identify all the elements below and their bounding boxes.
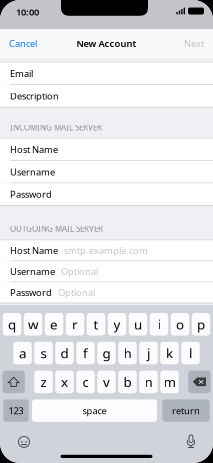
- button[interactable]: b: [118, 371, 137, 393]
- staticText: smtp.example.com: [64, 244, 148, 257]
- button[interactable]: g: [97, 342, 116, 364]
- staticText: 123: [8, 404, 23, 417]
- button[interactable]: Delete: [188, 371, 211, 393]
- button[interactable]: Email: [0, 63, 213, 84]
- button[interactable]: Next: [175, 29, 213, 58]
- button[interactable]: Shift: [2, 371, 25, 393]
- button[interactable]: Host Name: [0, 240, 213, 261]
- staticText: g: [102, 344, 110, 362]
- staticText: i: [157, 315, 160, 333]
- staticText: Password: [10, 188, 52, 200]
- staticText: OUTGOING MAIL SERVER: [10, 223, 103, 234]
- button[interactable]: x: [55, 371, 74, 393]
- button[interactable]: Emoji keyboard: [13, 435, 35, 449]
- button[interactable]: s: [34, 342, 53, 364]
- button[interactable]: y: [108, 313, 126, 335]
- staticText: l: [189, 344, 192, 362]
- staticText: Host Name: [10, 143, 58, 156]
- staticText: New Account: [76, 37, 136, 50]
- staticText: s: [40, 344, 46, 362]
- button[interactable]: Dictation: [180, 435, 202, 449]
- staticText: Optional: [61, 265, 98, 278]
- staticText: Optional: [58, 286, 95, 299]
- staticText: r: [72, 315, 78, 333]
- staticText: v: [103, 373, 110, 391]
- staticText: Cancel: [9, 37, 37, 50]
- staticText: k: [166, 344, 173, 362]
- staticText: q: [8, 315, 16, 333]
- button[interactable]: Cancel: [0, 29, 46, 58]
- button[interactable]: o: [171, 313, 189, 335]
- button[interactable]: e: [45, 313, 63, 335]
- button[interactable]: t: [87, 313, 105, 335]
- button[interactable]: z: [34, 371, 53, 393]
- button[interactable]: Password: [0, 282, 213, 303]
- staticText: t: [93, 315, 98, 333]
- staticText: n: [144, 373, 152, 391]
- staticText: Email: [10, 67, 33, 80]
- staticText: return: [172, 404, 200, 417]
- button[interactable]: return: [162, 399, 210, 422]
- staticText: p: [197, 315, 205, 333]
- button[interactable]: j: [139, 342, 158, 364]
- staticText: a: [19, 344, 26, 362]
- staticText: o: [176, 315, 184, 333]
- staticText: 10:00: [16, 6, 39, 18]
- staticText: f: [83, 344, 88, 362]
- staticText: b: [123, 373, 131, 391]
- staticText: Username: [10, 265, 55, 278]
- button[interactable]: Username: [0, 161, 213, 183]
- staticText: x: [61, 373, 68, 391]
- button[interactable]: d: [55, 342, 74, 364]
- button[interactable]: p: [192, 313, 210, 335]
- staticText: m: [163, 373, 175, 391]
- button[interactable]: f: [76, 342, 95, 364]
- staticText: u: [134, 315, 142, 333]
- button[interactable]: h: [118, 342, 137, 364]
- staticText: Next: [184, 37, 204, 50]
- staticText: e: [50, 315, 58, 333]
- button[interactable]: 123: [3, 399, 29, 422]
- button[interactable]: r: [66, 313, 84, 335]
- staticText: z: [40, 373, 46, 391]
- staticText: j: [147, 344, 150, 362]
- button[interactable]: Username: [0, 261, 213, 282]
- button[interactable]: i: [150, 313, 168, 335]
- staticText: w: [28, 315, 38, 333]
- staticText: d: [60, 344, 68, 362]
- button[interactable]: Description: [0, 85, 213, 107]
- button[interactable]: Host Name: [0, 138, 213, 160]
- button[interactable]: a: [13, 342, 32, 364]
- staticText: Description: [10, 90, 59, 102]
- button[interactable]: v: [97, 371, 116, 393]
- button[interactable]: c: [76, 371, 95, 393]
- button[interactable]: k: [160, 342, 179, 364]
- button[interactable]: q: [3, 313, 21, 335]
- staticText: Host Name: [10, 244, 58, 257]
- staticText: INCOMING MAIL SERVER: [10, 122, 102, 133]
- staticText: Username: [10, 166, 55, 178]
- button[interactable]: Password: [0, 183, 213, 205]
- button[interactable]: u: [129, 313, 147, 335]
- staticText: c: [82, 373, 88, 391]
- button[interactable]: space: [32, 399, 157, 422]
- staticText: space: [82, 404, 106, 417]
- button[interactable]: l: [181, 342, 200, 364]
- button[interactable]: w: [24, 313, 42, 335]
- staticText: Password: [10, 286, 52, 299]
- staticText: y: [113, 315, 120, 333]
- button[interactable]: m: [160, 371, 179, 393]
- staticText: h: [123, 344, 131, 362]
- button[interactable]: n: [139, 371, 158, 393]
